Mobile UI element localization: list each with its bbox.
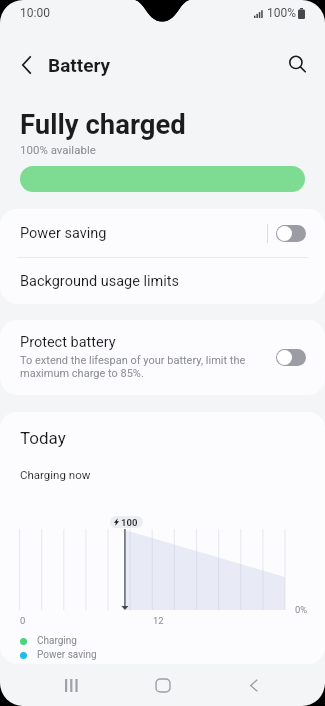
staticText: Today — [20, 428, 66, 448]
staticText: Protect battery — [20, 334, 116, 351]
button[interactable]: Protect battery — [0, 320, 325, 395]
staticText: 10:00 — [20, 6, 50, 20]
button[interactable]: Home — [140, 666, 186, 705]
staticText: To extend the lifespan of your battery, … — [20, 354, 260, 380]
staticText: 0% — [295, 604, 308, 615]
staticText: 100% — [267, 6, 297, 20]
staticText: 100 — [121, 517, 138, 528]
staticText: 100% available — [20, 143, 96, 156]
button[interactable]: Back — [231, 666, 277, 705]
staticText: Power saving — [37, 649, 97, 661]
button[interactable]: Toggle — [276, 225, 306, 242]
staticText: Battery — [48, 54, 111, 76]
button[interactable]: Toggle — [276, 349, 306, 366]
button[interactable]: Power saving — [0, 209, 325, 257]
staticText: 0 — [20, 615, 26, 626]
staticText: Charging now — [20, 468, 91, 481]
staticText: Background usage limits — [20, 273, 179, 290]
staticText: Fully charged — [20, 108, 186, 140]
staticText: Power saving — [20, 225, 107, 242]
staticText: Charging — [37, 635, 77, 647]
button[interactable]: Background usage limits — [0, 258, 325, 304]
button[interactable]: Recent apps — [48, 666, 94, 705]
staticText: 12 — [153, 615, 164, 626]
button[interactable]: Navigate up — [2, 41, 50, 89]
button[interactable]: Search — [274, 41, 322, 89]
